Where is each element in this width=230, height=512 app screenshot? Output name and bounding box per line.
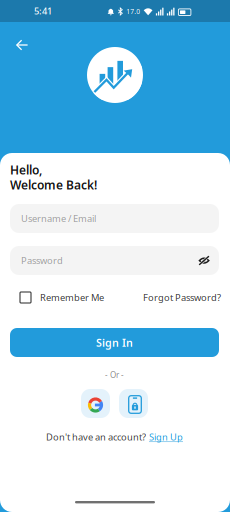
staticText: Username / Email [21,212,96,225]
staticText: Hello, [10,162,42,178]
staticText: 5:41 [34,5,52,17]
staticText: - Or - [105,370,124,380]
button[interactable]: Forgot Password? [143,289,221,306]
staticText: Forgot Password? [143,291,221,304]
button[interactable]: Sign in with phone [119,389,148,418]
staticText: Sign In [96,335,133,350]
button[interactable]: Sign In [10,328,219,357]
staticText: Sign Up [149,431,183,443]
button[interactable]: Back [8,31,36,59]
button[interactable]: Show password [195,251,213,269]
button[interactable]: Sign Up [149,431,183,443]
button[interactable]: Remember Me [20,289,104,306]
staticText: Password [21,254,63,267]
button[interactable]: Sign in with Google [81,389,110,418]
staticText: Remember Me [40,291,104,304]
staticText: Don't have an account? [46,431,146,443]
staticText: 17.0 [126,7,140,16]
staticText: Welcome Back! [10,177,97,193]
